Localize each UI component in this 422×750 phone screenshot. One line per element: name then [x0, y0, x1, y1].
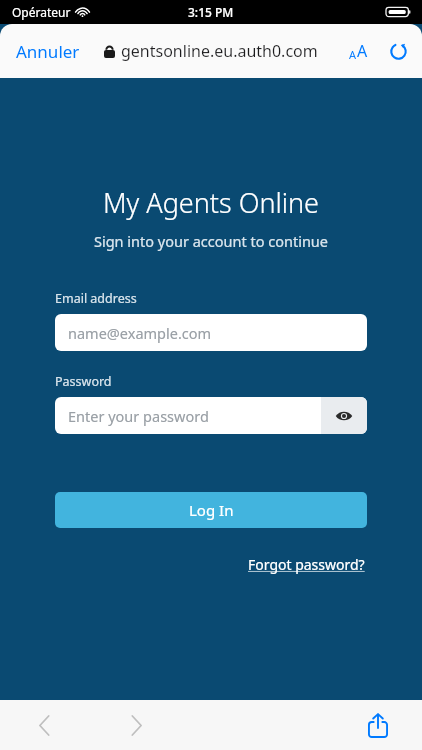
staticText: A: [349, 47, 357, 62]
button[interactable]: Forward: [114, 703, 158, 747]
staticText: My Agents Online: [0, 184, 422, 221]
button[interactable]: name@example.com: [55, 314, 367, 351]
staticText: Sign into your account to continue: [0, 231, 422, 251]
button[interactable]: Share: [356, 703, 400, 747]
button[interactable]: Show password: [321, 397, 367, 434]
button[interactable]: Back: [22, 703, 66, 747]
staticText: name@example.com: [68, 323, 212, 343]
button[interactable]: Text size: [345, 36, 372, 66]
button[interactable]: Forgot password?: [246, 553, 367, 576]
staticText: 3:15 PM: [188, 4, 234, 20]
staticText: Log In: [189, 500, 234, 520]
staticText: Enter your password: [68, 406, 209, 426]
button[interactable]: Log In: [55, 492, 367, 528]
staticText: Forgot password?: [248, 555, 365, 574]
staticText: Password: [55, 373, 112, 390]
button[interactable]: Enter your password: [55, 397, 321, 434]
staticText: Email address: [55, 290, 137, 307]
staticText: A: [357, 40, 368, 62]
staticText: Annuler: [16, 40, 80, 63]
staticText: gentsonline.eu.auth0.com: [121, 40, 318, 62]
button[interactable]: Annuler: [8, 34, 88, 69]
staticText: Opérateur: [12, 4, 71, 20]
button[interactable]: Reload: [384, 37, 412, 65]
